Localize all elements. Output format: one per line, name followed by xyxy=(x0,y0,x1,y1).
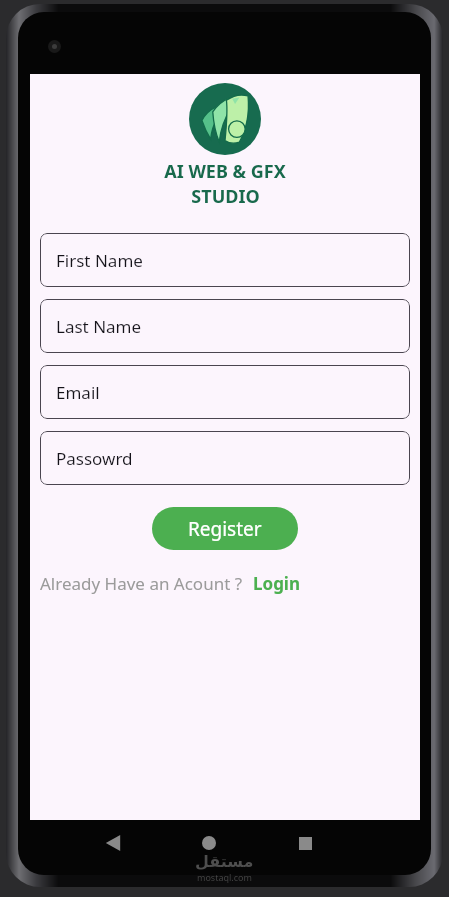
staticText: STUDIO xyxy=(191,184,260,209)
staticText: Register xyxy=(188,516,262,542)
staticText: AI WEB & GFX xyxy=(164,159,286,184)
button[interactable]: Back xyxy=(90,828,136,858)
staticText: mostaql.com xyxy=(197,871,252,883)
staticText: Passowrd xyxy=(56,447,133,470)
button[interactable]: Register xyxy=(152,507,298,550)
button[interactable]: Email xyxy=(40,365,410,419)
button[interactable]: Recent apps xyxy=(282,828,328,858)
staticText: Last Name xyxy=(56,315,142,338)
button[interactable]: Last Name xyxy=(40,299,410,353)
button[interactable]: Login xyxy=(253,572,301,595)
staticText: Login xyxy=(253,572,301,595)
staticText: Already Have an Acount ? xyxy=(40,572,243,595)
staticText: مستقل xyxy=(195,852,254,871)
button[interactable]: First Name xyxy=(40,233,410,287)
staticText: Email xyxy=(56,381,100,404)
button[interactable]: Passowrd xyxy=(40,431,410,485)
button[interactable]: Home xyxy=(186,828,232,858)
staticText: First Name xyxy=(56,249,143,272)
